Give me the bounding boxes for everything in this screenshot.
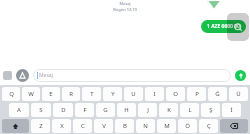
staticText: D xyxy=(61,106,66,114)
other: Backspace xyxy=(230,122,238,130)
staticText: A xyxy=(17,106,21,114)
button[interactable]: Send xyxy=(235,70,246,81)
button[interactable]: A xyxy=(9,103,29,117)
staticText: W xyxy=(28,90,34,98)
staticText: Ş xyxy=(209,106,213,114)
staticText: M xyxy=(164,122,170,130)
staticText: U xyxy=(131,90,136,98)
staticText: E xyxy=(49,90,53,98)
staticText: B xyxy=(123,122,127,130)
button[interactable]: R xyxy=(62,87,80,101)
button[interactable]: Mesaj xyxy=(33,69,231,82)
staticText: C xyxy=(81,122,85,130)
button[interactable]: S xyxy=(31,103,51,117)
staticText: K xyxy=(167,106,171,114)
staticText: G xyxy=(103,106,108,114)
button[interactable]: Message options xyxy=(227,13,249,41)
button[interactable]: H xyxy=(117,103,136,117)
staticText: O xyxy=(173,90,178,98)
button[interactable]: Attach xyxy=(3,71,12,80)
button[interactable]: Q xyxy=(2,87,20,101)
button[interactable]: K xyxy=(159,103,178,117)
button[interactable]: Key xyxy=(220,119,248,133)
button[interactable]: Ğ xyxy=(208,87,227,101)
button[interactable]: Ç xyxy=(199,119,218,133)
button[interactable]: B xyxy=(115,119,134,133)
button[interactable]: V xyxy=(94,119,113,133)
button[interactable]: D xyxy=(53,103,73,117)
button[interactable]: T xyxy=(82,87,101,101)
button[interactable]: Add xyxy=(16,69,29,82)
staticText: F xyxy=(83,106,87,114)
staticText: S xyxy=(39,106,43,114)
staticText: Y xyxy=(111,90,115,98)
staticText: I xyxy=(153,90,156,98)
staticText: Bugün 12:19 xyxy=(113,7,137,12)
staticText: 1 AZE 0000 00 xyxy=(207,23,240,30)
staticText: T xyxy=(90,90,94,98)
staticText: Mesaj xyxy=(39,72,53,79)
staticText: R xyxy=(69,90,73,98)
staticText: İ xyxy=(230,106,233,114)
staticText: Q xyxy=(9,90,14,98)
staticText: Ö xyxy=(185,122,190,130)
button[interactable]: Ş xyxy=(201,103,220,117)
staticText: Mesaj xyxy=(119,1,131,6)
button[interactable]: Y xyxy=(103,87,122,101)
staticText: V xyxy=(102,122,106,130)
button[interactable]: C xyxy=(73,119,92,133)
button[interactable]: J xyxy=(138,103,157,117)
button[interactable]: 1 AZE 0000 00 xyxy=(201,20,246,33)
staticText: Z xyxy=(39,122,43,130)
button[interactable]: O xyxy=(166,87,185,101)
staticText: Ğ xyxy=(215,90,220,98)
button[interactable]: Ö xyxy=(178,119,197,133)
button[interactable]: Key xyxy=(2,119,29,133)
button[interactable]: I xyxy=(145,87,164,101)
button[interactable]: E xyxy=(42,87,60,101)
staticText: X xyxy=(60,122,64,130)
staticText: Ç xyxy=(207,122,211,130)
staticText: L xyxy=(188,106,192,114)
staticText: J xyxy=(147,106,149,114)
button[interactable]: X xyxy=(52,119,71,133)
staticText: Ü xyxy=(236,90,241,98)
other: Shift xyxy=(12,123,19,130)
button[interactable]: L xyxy=(180,103,199,117)
button[interactable]: P xyxy=(187,87,206,101)
button[interactable]: Ü xyxy=(229,87,248,101)
button[interactable]: U xyxy=(124,87,143,101)
button[interactable]: W xyxy=(22,87,40,101)
button[interactable]: İ xyxy=(222,103,241,117)
button[interactable]: Z xyxy=(31,119,50,133)
staticText: P xyxy=(195,90,199,98)
button[interactable]: N xyxy=(136,119,155,133)
button[interactable]: M xyxy=(157,119,176,133)
staticText: H xyxy=(124,106,129,114)
staticText: N xyxy=(143,122,148,130)
button[interactable]: F xyxy=(75,103,94,117)
button[interactable]: G xyxy=(96,103,115,117)
